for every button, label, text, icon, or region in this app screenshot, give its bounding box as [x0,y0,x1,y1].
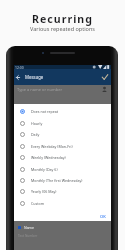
button[interactable]: Every Weekday (Mon-Fri) [14,141,111,152]
staticText: Daily [31,132,40,137]
button[interactable]: Monthly (Day 6) [14,164,111,175]
button[interactable]: Contacts [101,86,108,93]
staticText: Various repeated options [30,25,95,32]
staticText: Text Number [18,234,38,238]
staticText: 12:00 [15,65,24,69]
staticText: Weekly (Wednesday) [31,155,66,160]
staticText: Every Weekday (Mon-Fri) [31,144,73,149]
button[interactable]: Name [14,221,111,234]
button[interactable]: Hourly [14,118,111,129]
staticText: Yearly (06 May) [31,189,57,194]
button[interactable]: OK [99,213,107,220]
staticText: Custom [31,201,45,206]
button[interactable]: Yearly (06 May) [14,186,111,197]
button[interactable]: Weekly (Wednesday) [14,152,111,163]
staticText: Monthly (Day 6) [31,167,58,172]
button[interactable]: Back [14,74,21,81]
staticText: Message [25,74,44,80]
button[interactable]: Does not repeat [14,106,111,117]
staticText: Hourly [31,121,43,126]
button[interactable]: Done [101,73,109,81]
button[interactable]: Monthly (The first Wednesday) [14,175,111,186]
staticText: Monthly (The first Wednesday) [31,178,83,183]
staticText: Name [24,225,34,230]
button[interactable]: Daily [14,129,111,140]
staticText: OK [100,214,106,219]
button[interactable]: Custom [14,198,111,209]
staticText: Type a name or number [17,87,63,92]
staticText: Recurring [32,12,93,26]
staticText: Does not repeat [31,109,59,114]
